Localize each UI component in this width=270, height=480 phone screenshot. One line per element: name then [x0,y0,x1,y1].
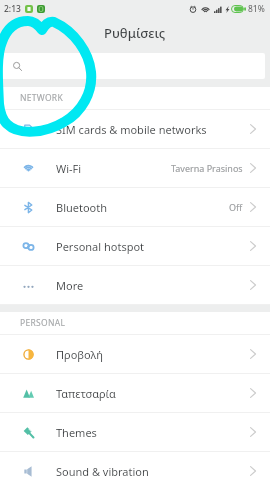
staticText: Bluetooth [56,200,108,215]
staticText: Sound & vibration [56,464,149,479]
staticText: Ταπετσαρία [56,386,116,401]
button[interactable]: Themes [0,413,270,451]
button[interactable]: SIM cards & mobile networks [0,110,270,148]
staticText: Themes [56,425,97,440]
button[interactable]: Search [0,53,265,79]
button[interactable]: Wi-Fi [0,149,270,187]
staticText: SIM cards & mobile networks [56,122,207,137]
button[interactable]: Προβολή [0,335,270,373]
button[interactable]: Bluetooth [0,188,270,226]
staticText: 81% [248,3,265,15]
staticText: Προβολή [56,347,103,362]
staticText: 2:13 [4,3,21,15]
staticText: Personal hotspot [56,239,145,254]
button[interactable]: Personal hotspot [0,227,270,265]
staticText: More [56,278,84,293]
staticText: NETWORK [20,92,64,104]
button[interactable]: More [0,266,270,304]
staticText: Wi-Fi [56,161,82,176]
staticText: Taverna Prasinos [171,162,243,174]
staticText: Ρυθμίσεις [104,24,166,42]
button[interactable]: Ταπετσαρία [0,374,270,412]
staticText: PERSONAL [20,317,66,329]
button[interactable]: Sound & vibration [0,452,270,480]
staticText: Off [229,201,243,213]
